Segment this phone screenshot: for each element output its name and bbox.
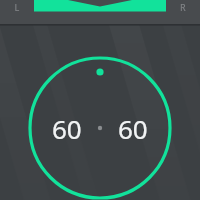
button[interactable]: Tempo dial, 60 beats per minute [0,0,200,200]
button[interactable]: Tempo dial, 60 beats per minute [0,0,200,200]
